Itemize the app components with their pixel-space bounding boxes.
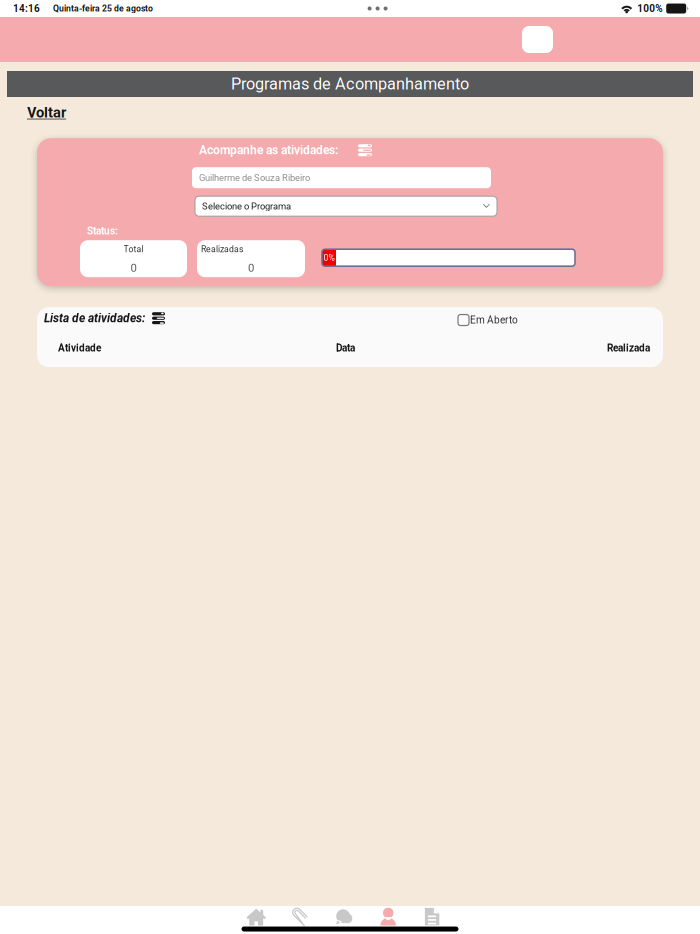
staticText: Status:: [87, 225, 118, 237]
button[interactable]: Mensagens: [322, 907, 366, 925]
staticText: Data: [336, 342, 355, 354]
staticText: Atividade: [58, 342, 101, 354]
staticText: Realizadas: [201, 244, 243, 254]
button[interactable]: Anexos: [278, 906, 322, 926]
staticText: Programas de Acompanhamento: [231, 74, 469, 94]
button[interactable]: Em Aberto: [458, 314, 518, 326]
button[interactable]: Selecione o Programa: [195, 196, 497, 216]
button[interactable]: Documentos: [410, 907, 454, 925]
staticText: Total: [123, 244, 143, 254]
staticText: Realizada: [607, 342, 650, 354]
button[interactable]: Início: [234, 907, 278, 925]
staticText: 0: [248, 261, 254, 275]
staticText: Selecione o Programa: [202, 201, 291, 212]
button[interactable]: Voltar: [27, 104, 66, 121]
staticText: Lista de atividades:: [44, 311, 145, 325]
staticText: 100%: [637, 3, 662, 14]
staticText: 14:16: [13, 3, 40, 14]
staticText: Guilherme de Souza Ribeiro: [199, 172, 310, 183]
staticText: Voltar: [27, 104, 66, 121]
staticText: Acompanhe as atividades:: [199, 143, 338, 157]
staticText: Em Aberto: [470, 314, 518, 326]
staticText: 0%: [323, 253, 334, 263]
button[interactable]: Guilherme de Souza Ribeiro: [192, 167, 491, 188]
staticText: Quinta-feira 25 de agosto: [53, 3, 153, 14]
button[interactable]: Perfil: [366, 907, 410, 925]
staticText: 0: [130, 261, 136, 275]
